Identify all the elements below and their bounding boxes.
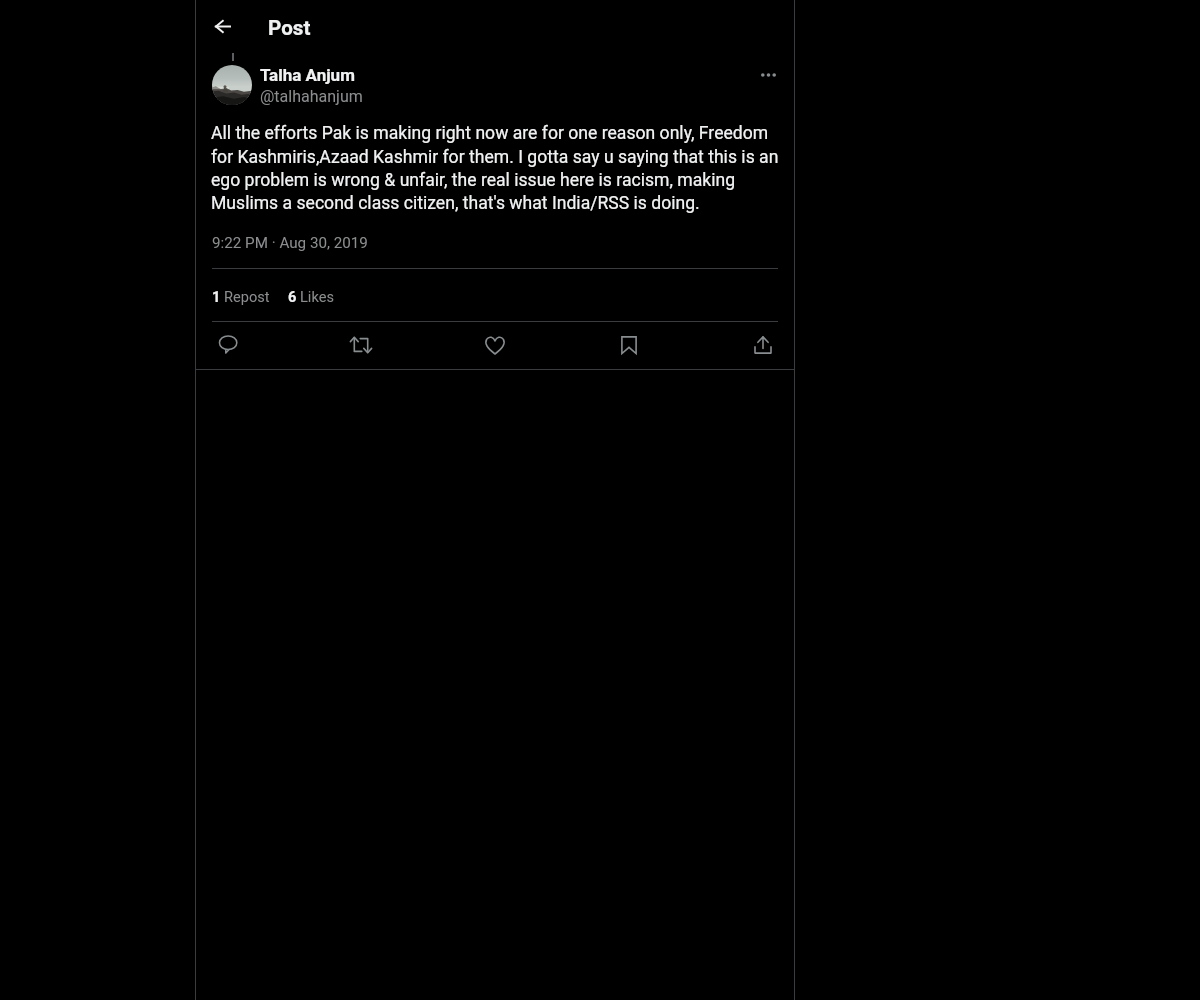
button[interactable]: Like (478, 328, 512, 362)
staticText: All the efforts Pak is making right now … (211, 123, 781, 213)
button[interactable]: Reply (211, 328, 245, 362)
button[interactable]: Repost (344, 328, 378, 362)
staticText: 6 Likes (288, 288, 334, 305)
staticText: 1 Repost (212, 288, 270, 305)
button[interactable]: Back (200, 9, 236, 45)
staticText: Talha Anjum (260, 65, 355, 85)
button[interactable]: 6 Likes (288, 288, 334, 305)
button[interactable]: More options (752, 59, 784, 91)
button[interactable]: Profile photo of Talha Anjum (212, 65, 252, 105)
button[interactable]: Bookmark (612, 328, 646, 362)
button[interactable]: 1 Repost (212, 288, 270, 305)
button[interactable]: Talha Anjum (260, 65, 420, 107)
staticText: @talhahanjum (260, 87, 363, 106)
button[interactable]: Share (746, 328, 780, 362)
staticText: 9:22 PM · Aug 30, 2019 (212, 234, 368, 252)
staticText: Post (268, 16, 311, 40)
